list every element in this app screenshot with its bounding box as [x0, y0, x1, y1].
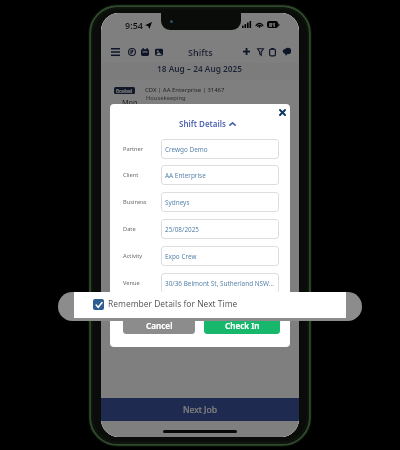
staticText: Mon	[122, 97, 138, 107]
staticText: Sydneys	[165, 198, 190, 207]
staticText: Remember Details for Next Time	[108, 298, 238, 310]
staticText: Client	[123, 171, 139, 179]
staticText: Date	[123, 225, 136, 233]
button[interactable]: Clipboard	[266, 45, 279, 58]
button[interactable]: Close	[275, 105, 289, 119]
button[interactable]: Messages	[280, 45, 293, 58]
button[interactable]: Add	[240, 45, 253, 58]
staticText: Shifts	[188, 46, 213, 58]
button[interactable]: Shift Details	[179, 118, 236, 129]
staticText: Business	[123, 198, 147, 206]
staticText: 9:54	[125, 19, 143, 31]
staticText: Shift Details	[179, 118, 226, 129]
staticText: Housekeeping	[146, 94, 186, 102]
staticText: 18 Aug – 24 Aug 2025	[157, 63, 243, 74]
button[interactable]: Sydneys	[161, 192, 279, 212]
button[interactable]: 30/36 Belmont St, Sutherland NSW...	[161, 273, 279, 293]
staticText: Partner	[123, 145, 144, 153]
button[interactable]: Next Job	[101, 398, 299, 421]
button[interactable]: Reports	[152, 45, 165, 58]
staticText: Crewgo Demo	[165, 145, 208, 154]
button[interactable]: Crewgo Demo	[161, 139, 279, 159]
button[interactable]: Menu	[109, 45, 122, 58]
staticText: Activity	[123, 252, 143, 260]
button[interactable]: Calendar	[138, 45, 151, 58]
staticText: CDX | AA Enterprise | 31467	[145, 86, 225, 94]
staticText: 30/36 Belmont St, Sutherland NSW...	[165, 279, 274, 288]
staticText: Cancel	[146, 320, 173, 331]
button[interactable]: Expo Crew	[161, 246, 279, 266]
button[interactable]: Cancel	[123, 317, 195, 334]
staticText: 81	[269, 21, 276, 28]
staticText: Expo Crew	[165, 252, 197, 261]
button[interactable]: 25/08/2025	[161, 219, 279, 239]
staticText: Next Job	[183, 404, 217, 416]
staticText: AA Enterprise	[165, 171, 206, 180]
button[interactable]: Check In	[204, 317, 280, 334]
button[interactable]: AA Enterprise	[161, 165, 279, 185]
button[interactable]: Filter	[254, 45, 267, 58]
staticText: Check In	[225, 320, 260, 331]
staticText: 25/08/2025	[165, 225, 199, 234]
button[interactable]: Profile	[125, 45, 138, 58]
staticText: Booked	[116, 88, 133, 94]
button[interactable]: Remember Details for Next Time	[74, 292, 346, 316]
staticText: Venue	[123, 279, 140, 287]
